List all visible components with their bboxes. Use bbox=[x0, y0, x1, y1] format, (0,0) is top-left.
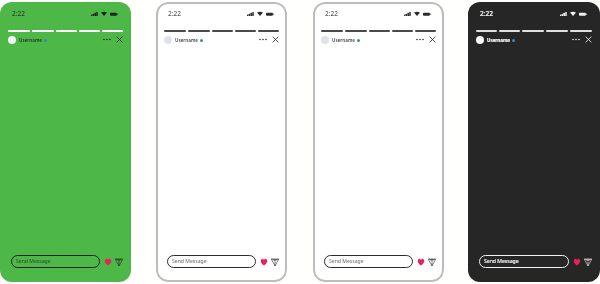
button[interactable]: Like bbox=[416, 257, 425, 266]
button[interactable]: Send bbox=[114, 257, 123, 266]
button[interactable]: Send Message bbox=[479, 255, 569, 268]
button[interactable]: Send bbox=[270, 257, 279, 266]
button[interactable]: Like bbox=[572, 257, 581, 266]
button[interactable]: Send Message bbox=[324, 255, 413, 268]
button[interactable]: Send bbox=[583, 257, 592, 266]
staticText: Username bbox=[175, 37, 199, 43]
staticText: 2:22 bbox=[12, 9, 25, 18]
staticText: Send Message bbox=[172, 258, 207, 265]
button[interactable]: Send bbox=[427, 257, 436, 266]
staticText: Username bbox=[332, 37, 356, 43]
button[interactable]: More options bbox=[257, 33, 268, 45]
staticText: Username bbox=[487, 37, 511, 43]
staticText: 2:22 bbox=[325, 9, 338, 18]
staticText: Username bbox=[19, 37, 43, 43]
staticText: Send Message bbox=[16, 258, 51, 265]
button[interactable]: Send Message bbox=[11, 255, 100, 268]
button[interactable]: Send Message bbox=[167, 255, 256, 268]
staticText: Send Message bbox=[329, 258, 364, 265]
button[interactable]: Close bbox=[427, 33, 437, 45]
staticText: 2:22 bbox=[168, 9, 181, 18]
button[interactable]: Like bbox=[103, 257, 112, 266]
button[interactable]: More options bbox=[101, 33, 112, 45]
button[interactable]: More options bbox=[570, 33, 581, 45]
button[interactable]: Like bbox=[259, 257, 268, 266]
staticText: Send Message bbox=[484, 258, 519, 265]
staticText: 2:22 bbox=[480, 9, 493, 18]
button[interactable]: Close bbox=[114, 33, 124, 45]
button[interactable]: Close bbox=[270, 33, 280, 45]
button[interactable]: Close bbox=[583, 33, 593, 45]
button[interactable]: More options bbox=[414, 33, 425, 45]
